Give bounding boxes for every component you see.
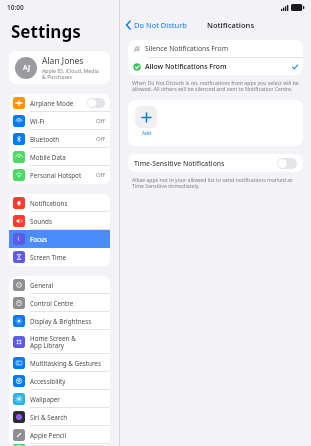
staticText: Face ID & Passcode [30,444,105,446]
staticText: Silence Notifications From [145,44,298,53]
button[interactable]: Focus [9,230,110,248]
staticText: Personal Hotspot [30,171,96,180]
button[interactable]: General [9,276,110,294]
button[interactable]: Allow Notifications From [128,58,303,75]
staticText: Mobile Data [30,153,105,162]
staticText: Alan Jones [42,55,84,67]
staticText: General [30,281,105,290]
staticText: Allow apps not in your allowed list to s… [132,176,299,190]
staticText: Off [96,117,105,125]
staticText: Settings [11,20,81,43]
button[interactable]: Accessibility [9,372,110,390]
staticText: AJ [23,63,30,73]
staticText: Siri & Search [30,413,105,422]
staticText: Control Centre [30,299,105,308]
staticText: Do Not Disturb [134,20,187,30]
staticText: When Do Not Disturb is on, notifications… [132,79,299,93]
staticText: Home Screen & App Library [30,334,105,350]
button[interactable]: Siri & Search [9,408,110,426]
staticText: 10:00 [7,3,24,12]
staticText: Notifications [30,199,105,208]
staticText: Apple ID, iCloud, Media & Purchases [42,67,99,81]
button[interactable]: Face ID & Passcode [9,444,110,446]
button[interactable]: Time-Sensitive Notifications toggle [277,158,297,169]
staticText: Notifications [207,20,255,30]
button[interactable]: Personal Hotspot [9,166,110,184]
staticText: Off [96,135,105,143]
button[interactable]: Control Centre [9,294,110,312]
button[interactable]: Apple Pencil [9,426,110,444]
button[interactable]: AJ [9,51,110,84]
button[interactable]: Add app [135,106,157,137]
button[interactable]: Bluetooth [9,130,110,148]
button[interactable]: Notifications [9,194,110,212]
staticText: Off [96,171,105,179]
button[interactable]: Wallpaper [9,390,110,408]
button[interactable]: Multitasking & Gestures [9,354,110,372]
staticText: Sounds [30,217,105,226]
button[interactable]: Airplane Mode toggle [87,98,105,108]
button[interactable]: Do Not Disturb [120,18,191,32]
staticText: Add [142,130,151,137]
button[interactable]: Wi-Fi [9,112,110,130]
button[interactable]: Screen Time [9,248,110,266]
staticText: Wallpaper [30,395,105,404]
button[interactable]: Mobile Data [9,148,110,166]
staticText: Multitasking & Gestures [30,359,105,368]
staticText: Time-Sensitive Notifications [134,159,277,168]
button[interactable]: Airplane Mode [9,94,110,112]
staticText: Airplane Mode [30,99,87,108]
staticText: Screen Time [30,253,105,262]
button[interactable]: Time-Sensitive Notifications [128,154,303,172]
button[interactable]: Home Screen & App Library [9,330,110,354]
button[interactable]: Display & Brightness [9,312,110,330]
staticText: Allow Notifications From [145,62,292,71]
staticText: Wi-Fi [30,117,96,126]
staticText: Accessibility [30,377,105,386]
staticText: Bluetooth [30,135,96,144]
button[interactable]: Sounds [9,212,110,230]
button[interactable]: Silence Notifications From [128,40,303,57]
staticText: Apple Pencil [30,431,105,440]
staticText: Focus [30,235,105,244]
staticText: Display & Brightness [30,317,105,326]
